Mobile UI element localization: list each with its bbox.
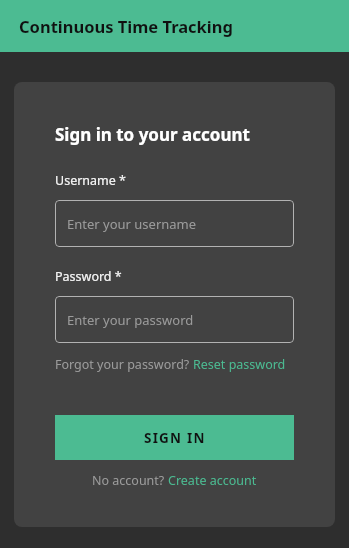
button[interactable]: Create account xyxy=(168,472,257,489)
staticText: Username * xyxy=(55,172,126,189)
staticText: Create account xyxy=(168,472,257,489)
button[interactable]: Reset password xyxy=(193,356,286,373)
button[interactable]: Password xyxy=(55,296,294,343)
staticText: Password * xyxy=(55,268,122,285)
button[interactable]: SIGN IN xyxy=(55,415,294,460)
staticText: No account? xyxy=(92,472,168,489)
staticText: Sign in to your account xyxy=(55,123,250,146)
staticText: Enter your username xyxy=(67,215,197,233)
staticText: SIGN IN xyxy=(144,429,206,447)
staticText: Reset password xyxy=(193,356,286,373)
staticText: Continuous Time Tracking xyxy=(19,15,233,37)
staticText: Forgot your password? xyxy=(55,356,193,373)
staticText: Enter your password xyxy=(67,311,194,329)
button[interactable]: Username xyxy=(55,200,294,247)
